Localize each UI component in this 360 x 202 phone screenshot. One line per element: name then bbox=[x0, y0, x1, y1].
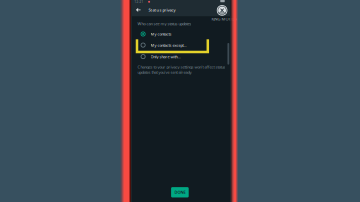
staticText: Status privacy bbox=[148, 7, 175, 12]
staticText: My contacts except… bbox=[151, 42, 187, 48]
staticText: 12:21 bbox=[135, 0, 144, 4]
staticText: Only share with… bbox=[151, 54, 181, 59]
staticText: DONE bbox=[174, 190, 185, 195]
staticText: Changes to your privacy settings won't a… bbox=[137, 64, 225, 75]
staticText: Who can see my status updates bbox=[137, 21, 191, 26]
button[interactable]: Back bbox=[133, 5, 143, 14]
button[interactable]: My contacts bbox=[131, 28, 230, 39]
button[interactable]: Only share with… bbox=[131, 51, 230, 62]
button[interactable]: DONE bbox=[171, 187, 189, 197]
staticText: KING MOTION bbox=[211, 16, 237, 22]
button[interactable]: My contacts except… bbox=[131, 40, 230, 51]
staticText: My contacts bbox=[151, 31, 172, 37]
